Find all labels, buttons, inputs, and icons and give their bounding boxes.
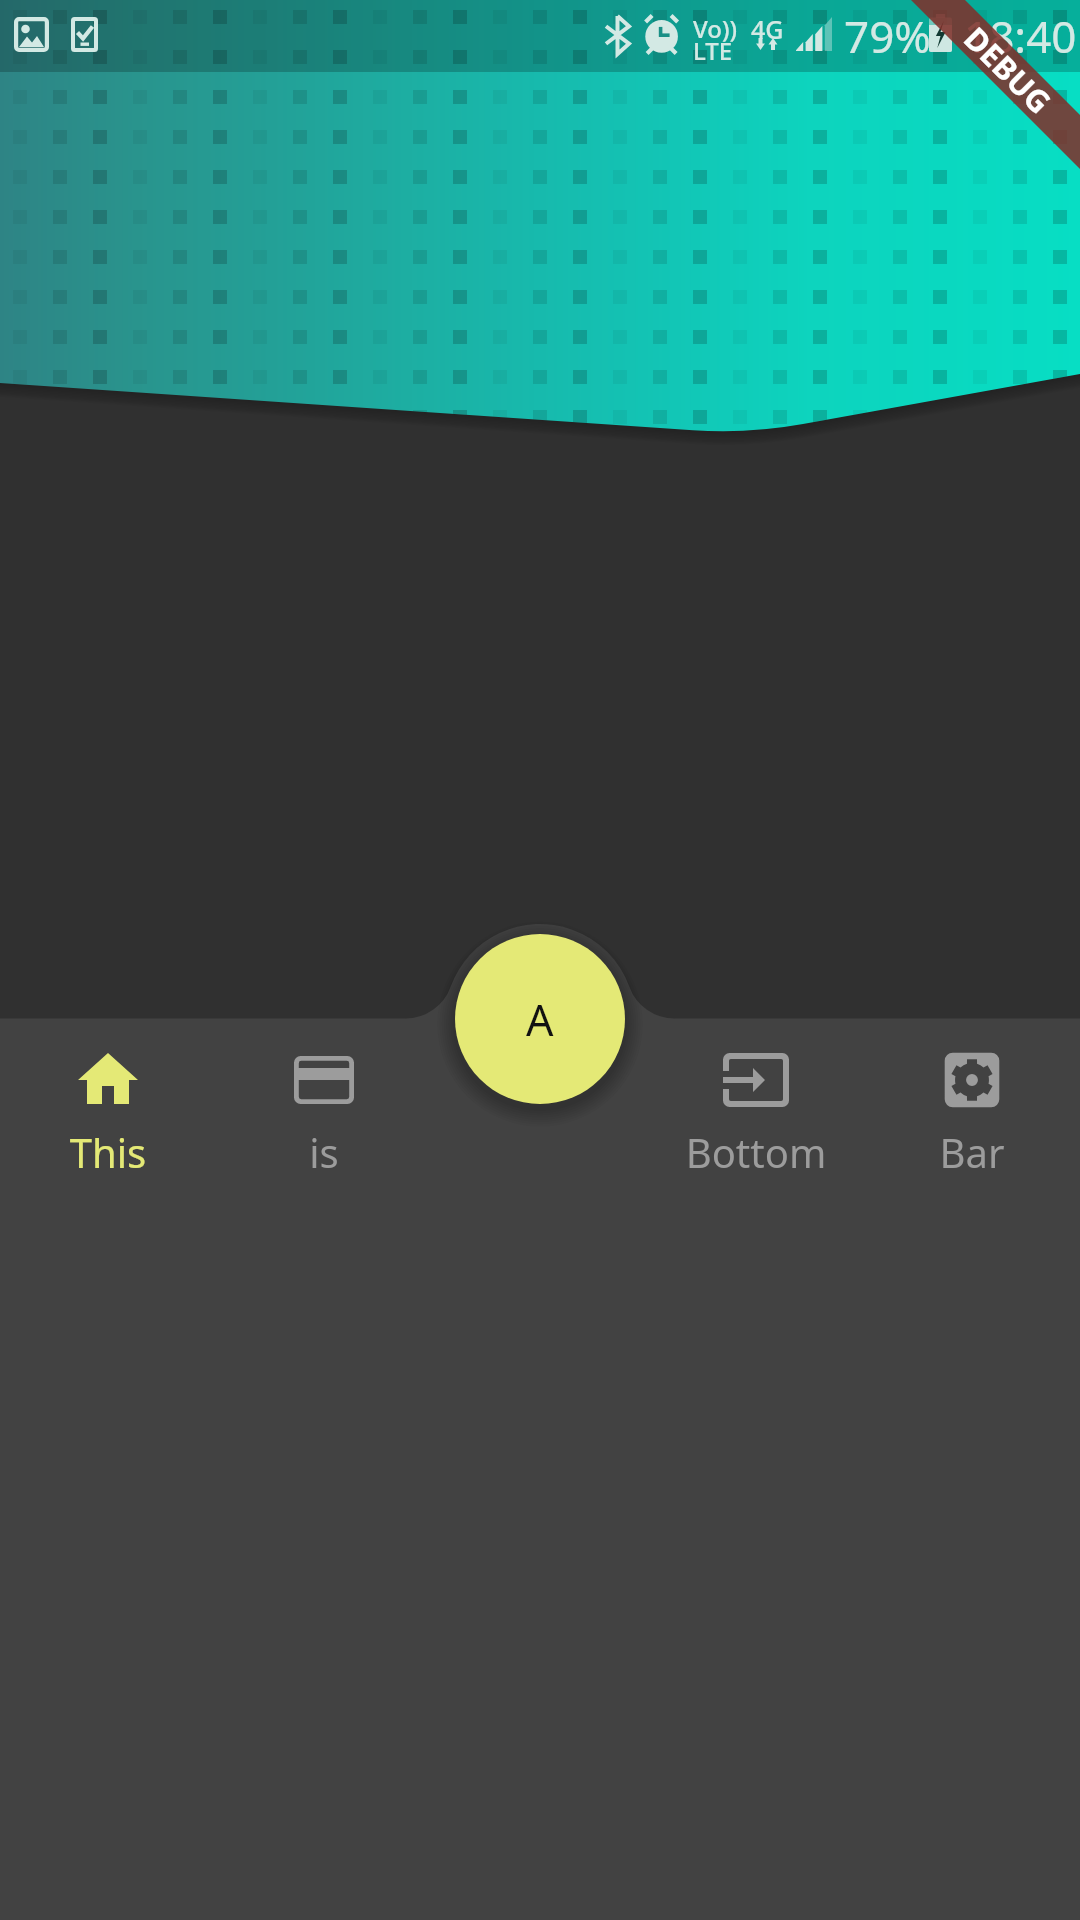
staticText: is [216,1125,432,1179]
staticText: Bottom [648,1125,864,1179]
button[interactable]: This [0,1044,216,1179]
button[interactable]: Bar [864,1044,1080,1179]
staticText: A [526,990,554,1049]
staticText: Vo)) [693,12,737,45]
staticText: 4G [751,12,784,46]
staticText: 79% [844,6,931,66]
button[interactable]: is [216,1044,432,1179]
staticText: LTE [693,34,733,67]
staticText: Bar [864,1125,1080,1179]
staticText: This [0,1125,216,1179]
button[interactable]: Bottom [648,1044,864,1179]
button[interactable]: Add [455,934,625,1104]
staticText: 18:40 [964,6,1077,66]
